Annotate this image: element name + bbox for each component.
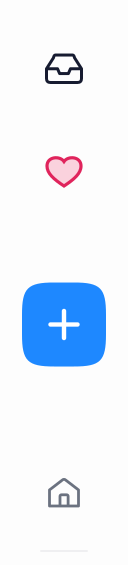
button[interactable]: Favorites xyxy=(47,157,81,186)
button[interactable]: Inbox xyxy=(46,55,81,82)
button[interactable]: Home xyxy=(49,479,78,506)
button[interactable]: New message xyxy=(22,282,106,366)
